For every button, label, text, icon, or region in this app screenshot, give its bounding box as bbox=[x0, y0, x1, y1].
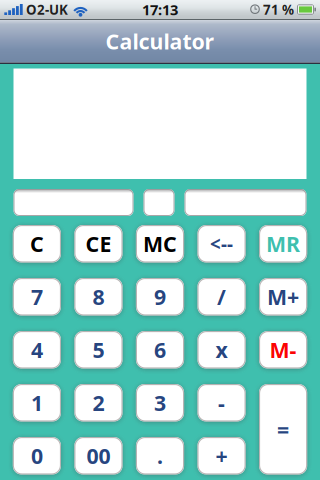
staticText: CE bbox=[85, 230, 111, 258]
button[interactable]: x bbox=[197, 331, 246, 368]
staticText: O2-UK bbox=[26, 1, 68, 18]
button[interactable]: / bbox=[197, 278, 246, 315]
button[interactable]: Input field bbox=[143, 189, 174, 216]
staticText: <-- bbox=[210, 231, 233, 256]
staticText: 17:13 bbox=[142, 0, 178, 19]
staticText: M+ bbox=[267, 283, 299, 311]
button[interactable]: CE bbox=[74, 225, 123, 262]
button[interactable]: 6 bbox=[136, 331, 184, 368]
staticText: + bbox=[215, 442, 227, 470]
staticText: 00 bbox=[86, 442, 110, 470]
staticText: M- bbox=[270, 336, 297, 364]
staticText: 7 bbox=[31, 283, 43, 311]
staticText: Calculator bbox=[105, 27, 214, 55]
staticText: 9 bbox=[154, 283, 166, 311]
staticText: MR bbox=[266, 230, 300, 258]
button[interactable]: 0 bbox=[13, 437, 61, 474]
button[interactable]: MC bbox=[136, 225, 184, 262]
button[interactable]: = bbox=[259, 384, 307, 474]
staticText: 5 bbox=[92, 336, 104, 364]
staticText: 71 % bbox=[263, 1, 294, 18]
staticText: C bbox=[30, 230, 44, 258]
button[interactable]: . bbox=[136, 437, 184, 474]
button[interactable]: Input field bbox=[13, 189, 133, 216]
staticText: 6 bbox=[154, 336, 166, 364]
button[interactable]: 4 bbox=[13, 331, 61, 368]
button[interactable]: MR bbox=[259, 225, 307, 262]
staticText: 3 bbox=[154, 389, 166, 417]
button[interactable]: M- bbox=[259, 331, 307, 368]
staticText: 8 bbox=[92, 283, 104, 311]
button[interactable]: <-- bbox=[197, 225, 246, 262]
staticText: / bbox=[217, 283, 226, 311]
button[interactable]: 5 bbox=[74, 331, 123, 368]
button[interactable]: - bbox=[197, 384, 246, 421]
staticText: . bbox=[157, 442, 163, 470]
staticText: MC bbox=[143, 230, 177, 258]
button[interactable]: Input field bbox=[184, 189, 306, 216]
staticText: x bbox=[216, 336, 228, 364]
button[interactable]: C bbox=[13, 225, 61, 262]
button[interactable]: M+ bbox=[259, 278, 307, 315]
staticText: 0 bbox=[31, 442, 43, 470]
button[interactable]: 9 bbox=[136, 278, 184, 315]
staticText: 4 bbox=[31, 336, 43, 364]
staticText: 1 bbox=[31, 389, 43, 417]
staticText: - bbox=[218, 389, 225, 417]
button[interactable]: 8 bbox=[74, 278, 123, 315]
button[interactable]: + bbox=[197, 437, 246, 474]
button[interactable]: 3 bbox=[136, 384, 184, 421]
button[interactable]: 7 bbox=[13, 278, 61, 315]
button[interactable]: 2 bbox=[74, 384, 122, 421]
button[interactable]: 1 bbox=[13, 384, 61, 421]
button[interactable]: 00 bbox=[74, 437, 122, 474]
staticText: 2 bbox=[92, 389, 104, 417]
staticText: = bbox=[277, 415, 289, 443]
